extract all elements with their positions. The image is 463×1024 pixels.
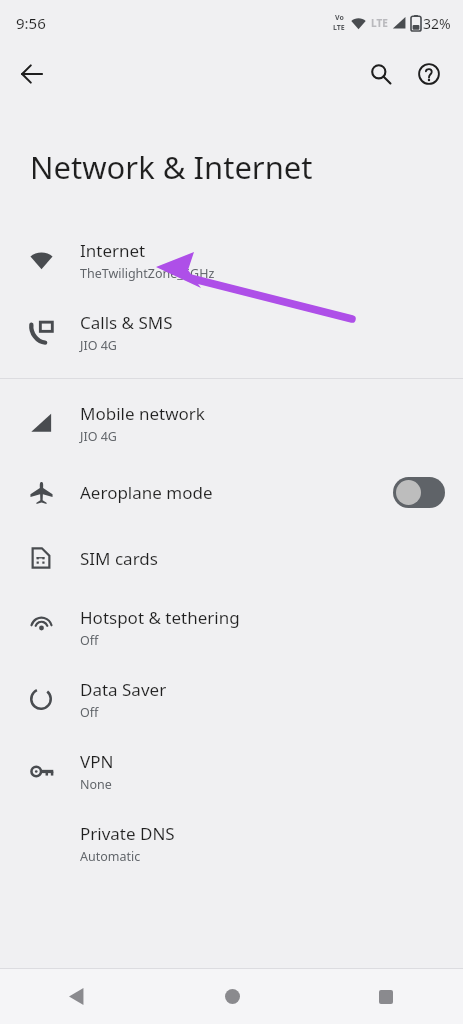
staticText: SIM cards: [80, 547, 158, 570]
button[interactable]: Mobile network: [0, 387, 463, 459]
button[interactable]: Aeroplane mode toggle: [393, 477, 445, 508]
button[interactable]: Back: [8, 50, 56, 98]
staticText: Network & Internet: [30, 146, 313, 188]
button[interactable]: Home: [155, 969, 309, 1024]
staticText: Mobile network: [80, 402, 205, 425]
staticText: Aeroplane mode: [80, 481, 213, 504]
staticText: TheTwilightZone_5GHz: [80, 265, 215, 282]
staticText: 32%: [423, 14, 451, 33]
staticText: VPN: [80, 750, 114, 773]
staticText: Off: [80, 632, 99, 649]
staticText: Off: [80, 704, 99, 721]
button[interactable]: Aeroplane mode: [0, 459, 463, 525]
button[interactable]: Internet: [0, 224, 463, 296]
staticText: Internet: [80, 239, 146, 262]
staticText: JIO 4G: [80, 428, 117, 445]
staticText: Data Saver: [80, 678, 167, 701]
button[interactable]: Private DNS: [0, 807, 463, 879]
staticText: LTE: [333, 23, 345, 33]
staticText: LTE: [371, 16, 388, 30]
button[interactable]: Help: [405, 50, 453, 98]
staticText: Automatic: [80, 848, 141, 865]
staticText: None: [80, 776, 112, 793]
button[interactable]: Data Saver: [0, 663, 463, 735]
button[interactable]: VPN: [0, 735, 463, 807]
staticText: Calls & SMS: [80, 311, 173, 334]
button[interactable]: Recent apps: [309, 969, 463, 1024]
staticText: Vo: [335, 13, 344, 23]
staticText: Private DNS: [80, 822, 175, 845]
staticText: 9:56: [16, 13, 46, 33]
staticText: JIO 4G: [80, 337, 117, 354]
button[interactable]: Calls & SMS: [0, 296, 463, 368]
button[interactable]: Search: [357, 50, 405, 98]
button[interactable]: Back: [0, 969, 155, 1024]
button[interactable]: Hotspot & tethering: [0, 591, 463, 663]
button[interactable]: SIM cards: [0, 525, 463, 591]
staticText: Hotspot & tethering: [80, 606, 240, 629]
